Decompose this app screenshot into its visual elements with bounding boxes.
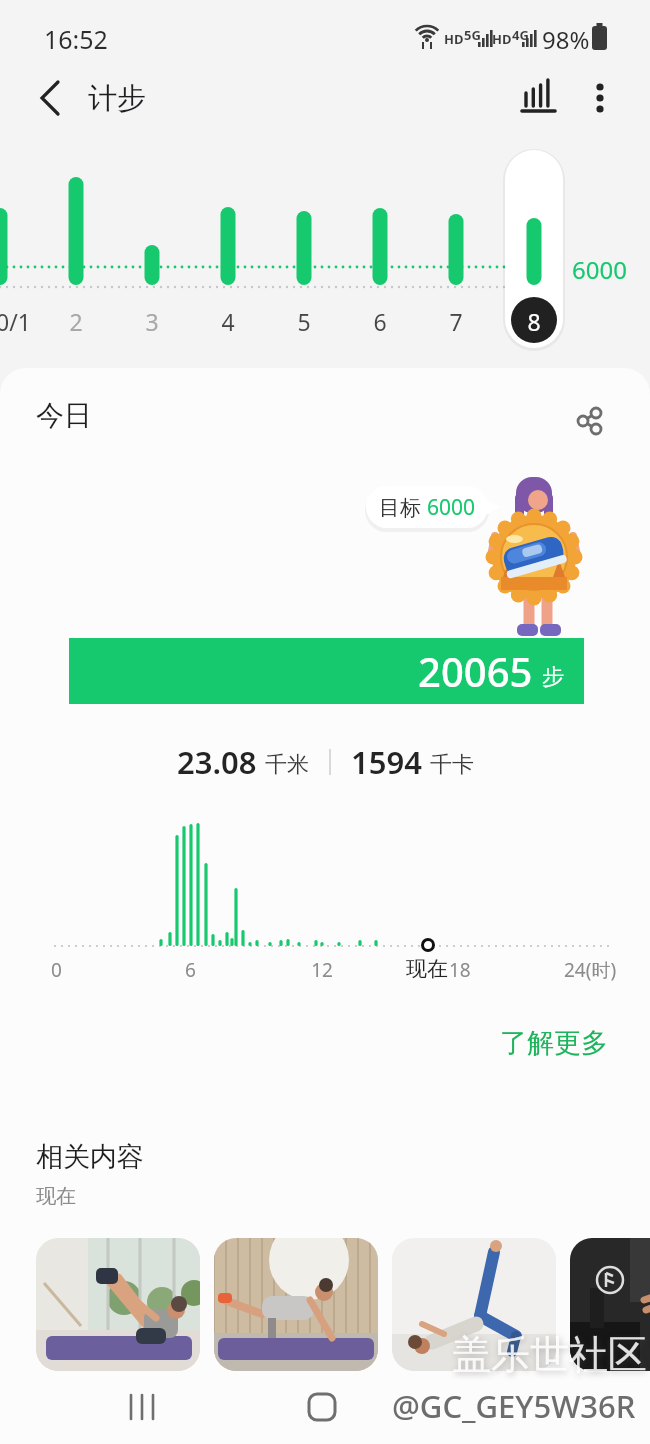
button[interactable] xyxy=(570,1238,650,1371)
staticText: 6000 xyxy=(572,253,627,286)
staticText: 今日 xyxy=(36,398,92,433)
staticText: 0 xyxy=(51,957,62,983)
button[interactable] xyxy=(568,398,612,442)
staticText: 了解更多 xyxy=(500,1026,608,1060)
button[interactable] xyxy=(580,76,620,120)
staticText: 1594 xyxy=(351,741,422,783)
staticText: 相关内容 xyxy=(36,1140,144,1174)
button[interactable] xyxy=(118,1385,162,1429)
button[interactable] xyxy=(30,76,74,120)
staticText: 18 xyxy=(449,957,471,983)
button[interactable]: 了解更多 xyxy=(490,1016,618,1070)
staticText: 98% xyxy=(542,23,590,56)
staticText: 千米 xyxy=(265,751,309,779)
staticText: @GC_GEY5W36R xyxy=(392,1385,636,1427)
staticText: 7 xyxy=(449,306,463,337)
staticText: 6000 xyxy=(427,493,476,522)
button[interactable] xyxy=(515,76,561,120)
button[interactable] xyxy=(300,1385,344,1429)
staticText: 20065 xyxy=(418,644,533,698)
button[interactable] xyxy=(392,1238,556,1371)
staticText: 4G xyxy=(512,26,529,44)
staticText: 千卡 xyxy=(430,751,474,779)
staticText: 6 xyxy=(185,957,196,983)
staticText: 8 xyxy=(527,306,541,337)
staticText: 目标 xyxy=(379,493,427,522)
staticText: 3 xyxy=(145,306,159,337)
staticText: 现在 xyxy=(36,1184,76,1209)
staticText: 2 xyxy=(69,306,83,337)
button[interactable] xyxy=(36,1238,200,1371)
staticText: 6 xyxy=(373,306,387,337)
staticText: 12 xyxy=(311,957,333,983)
staticText: 0/1 xyxy=(0,306,31,337)
staticText: 现在 xyxy=(406,956,448,982)
staticText: 16:52 xyxy=(44,22,108,56)
staticText: HD xyxy=(444,30,464,48)
button[interactable] xyxy=(214,1238,378,1371)
staticText: 5 xyxy=(297,306,311,337)
staticText: 23.08 xyxy=(177,741,257,783)
staticText: 计步 xyxy=(88,80,146,117)
staticText: 4 xyxy=(221,306,235,337)
staticText: HD xyxy=(492,30,512,48)
staticText: 5G xyxy=(464,26,481,44)
staticText: 步 xyxy=(542,663,564,691)
staticText: 24(时) xyxy=(564,957,617,983)
staticText: 盖乐世社区 xyxy=(452,1330,647,1379)
